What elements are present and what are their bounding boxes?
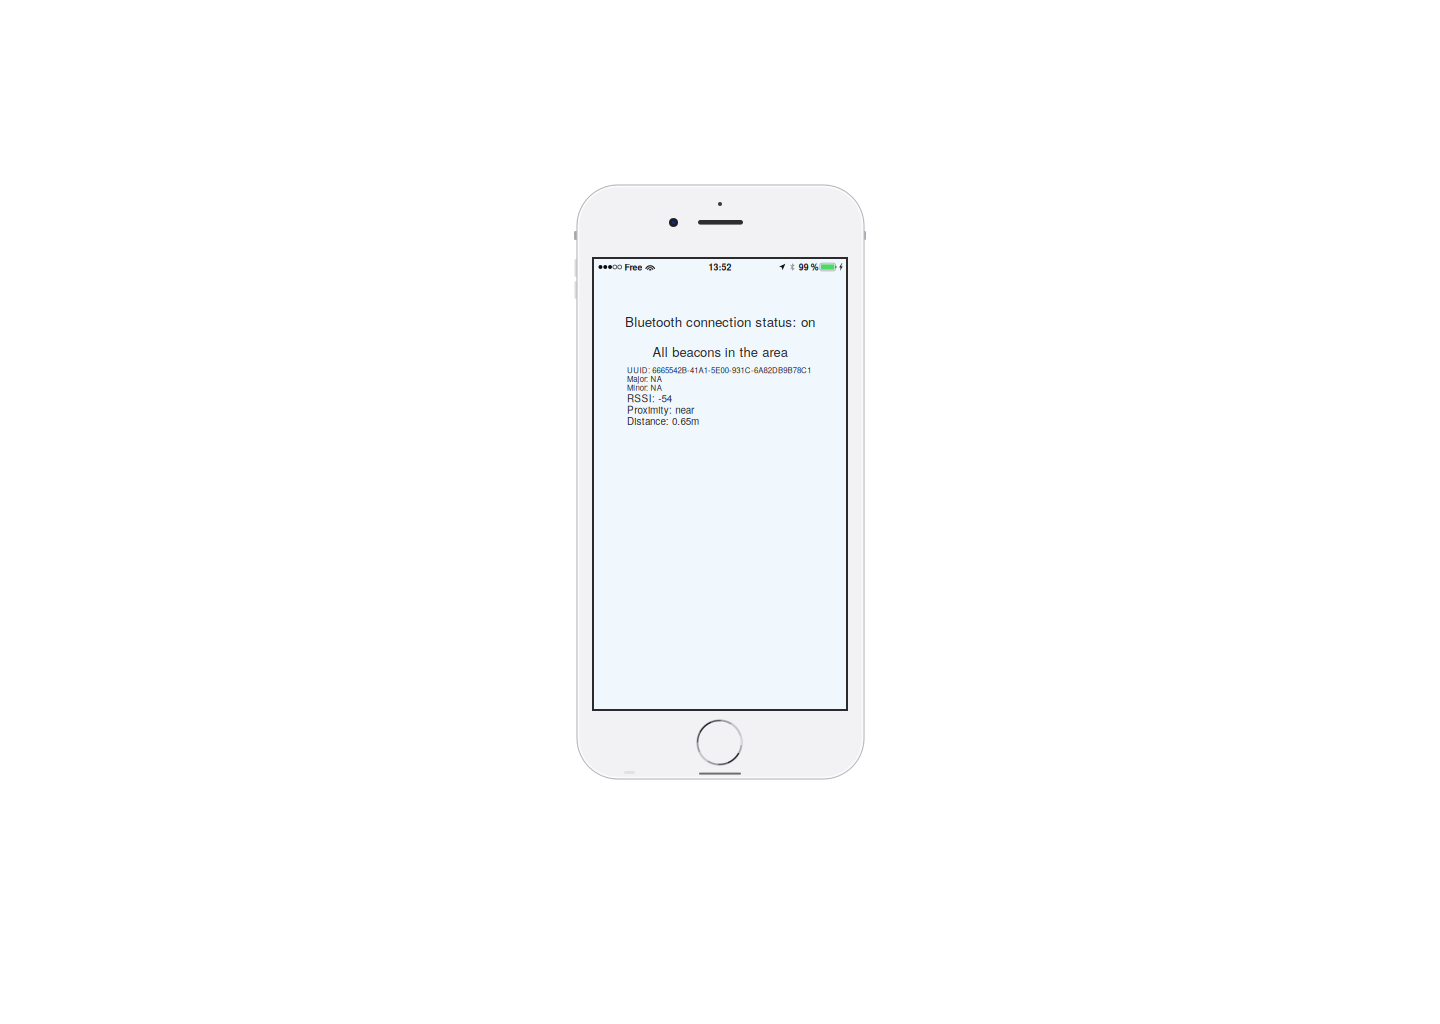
button[interactable]: Home <box>697 720 742 765</box>
staticText: 13:52 <box>708 261 731 273</box>
staticText: Major: NA <box>627 373 661 384</box>
staticText: UUID: 6665542B-41A1-5E00-931C-6A82DB9B78… <box>627 364 811 375</box>
staticText: Proximity: near <box>627 402 694 417</box>
staticText: Minor: NA <box>627 382 661 393</box>
staticText: 99 % <box>799 261 819 273</box>
staticText: All beacons in the area <box>652 342 788 360</box>
button[interactable]: UUID: 6665542B-41A1-5E00-931C-6A82DB9B78… <box>594 365 846 426</box>
staticText: RSSI: -54 <box>627 391 671 405</box>
staticText: Bluetooth connection status: on <box>625 312 815 331</box>
staticText: Free <box>624 261 642 273</box>
staticText: Distance: 0.65m <box>627 414 699 428</box>
